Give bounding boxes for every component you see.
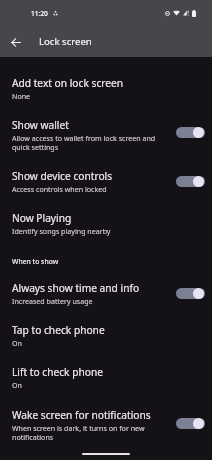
staticText: Show wallet (12, 118, 69, 132)
staticText: 11:20 (31, 9, 48, 18)
button[interactable]: Show device controls (0, 169, 212, 194)
staticText: Tap to check phone (12, 323, 105, 337)
staticText: Add text on lock screen (12, 76, 124, 90)
button[interactable]: Navigate up (0, 26, 31, 57)
staticText: On (12, 338, 22, 348)
staticText: On (12, 380, 22, 390)
button[interactable]: Show wallet (0, 118, 212, 152)
staticText: When screen is dark, it turns on for new… (12, 423, 170, 442)
button[interactable]: Always show time and info (0, 281, 212, 306)
button[interactable]: Wake screen for notifications (0, 408, 212, 442)
button[interactable]: Lift to check phone (0, 365, 212, 390)
button[interactable]: Now Playing (0, 211, 212, 236)
staticText: Now Playing (12, 211, 72, 225)
staticText: Lock screen (39, 35, 92, 48)
staticText: Lift to check phone (12, 365, 103, 379)
staticText: None (12, 91, 31, 101)
button[interactable]: Toggle setting (176, 176, 205, 187)
staticText: Always show time and info (12, 281, 140, 295)
staticText: Allow access to wallet from lock screen … (12, 133, 170, 152)
button[interactable]: Toggle setting (176, 288, 205, 299)
button[interactable]: Tap to check phone (0, 323, 212, 348)
button[interactable]: Add text on lock screen (0, 76, 212, 101)
button[interactable]: Toggle setting (176, 418, 205, 429)
staticText: Wake screen for notifications (12, 408, 151, 422)
staticText: Identify songs playing nearby (12, 226, 111, 236)
staticText: Access controls when locked (12, 184, 107, 194)
staticText: Increased battery usage (12, 296, 93, 306)
staticText: When to show (12, 257, 59, 266)
button[interactable]: Toggle setting (176, 127, 205, 138)
staticText: Show device controls (12, 169, 113, 183)
